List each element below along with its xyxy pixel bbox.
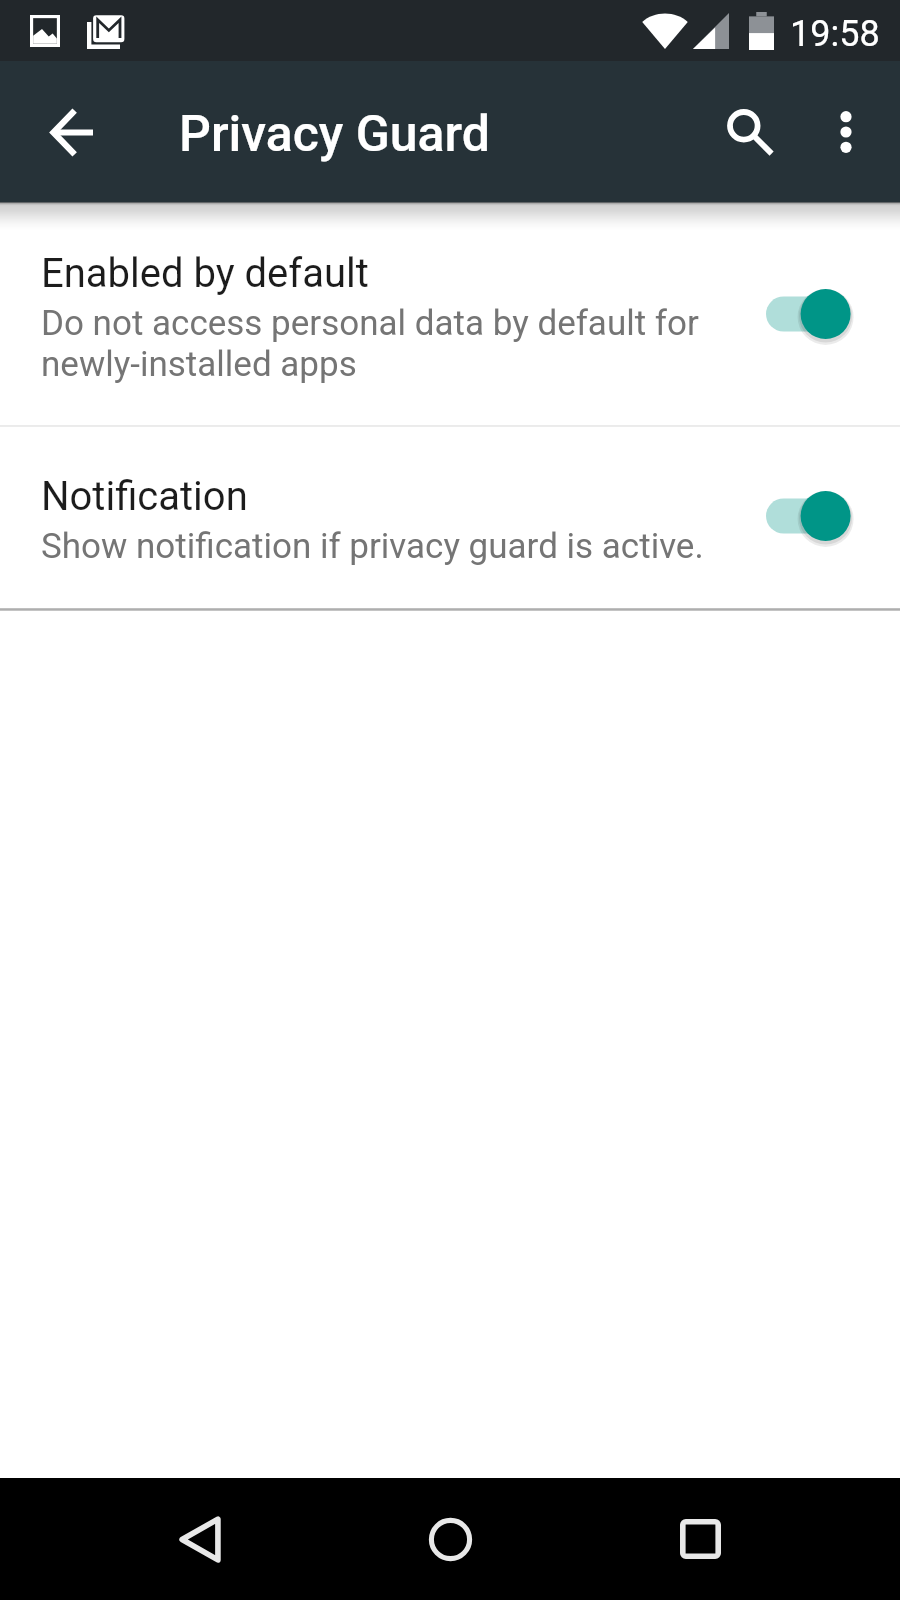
button[interactable]: Navigate up bbox=[24, 84, 120, 180]
button[interactable]: Notification bbox=[0, 427, 900, 608]
staticText: Do not access personal data by default f… bbox=[41, 303, 725, 385]
staticText: Notification bbox=[41, 473, 248, 520]
staticText: Show notification if privacy guard is ac… bbox=[41, 526, 704, 567]
button[interactable]: Toggle bbox=[753, 268, 865, 360]
button[interactable]: More options bbox=[798, 84, 894, 180]
staticText: 19:58 bbox=[790, 13, 880, 55]
staticText: Privacy Guard bbox=[179, 105, 490, 164]
button[interactable]: Back bbox=[143, 1484, 253, 1594]
button[interactable]: Toggle bbox=[753, 470, 865, 562]
staticText: Enabled by default bbox=[41, 250, 369, 297]
button[interactable]: Search bbox=[702, 84, 798, 180]
button[interactable]: Recent apps bbox=[648, 1484, 758, 1594]
button[interactable]: Home bbox=[395, 1484, 505, 1594]
button[interactable]: Enabled by default bbox=[0, 202, 900, 425]
